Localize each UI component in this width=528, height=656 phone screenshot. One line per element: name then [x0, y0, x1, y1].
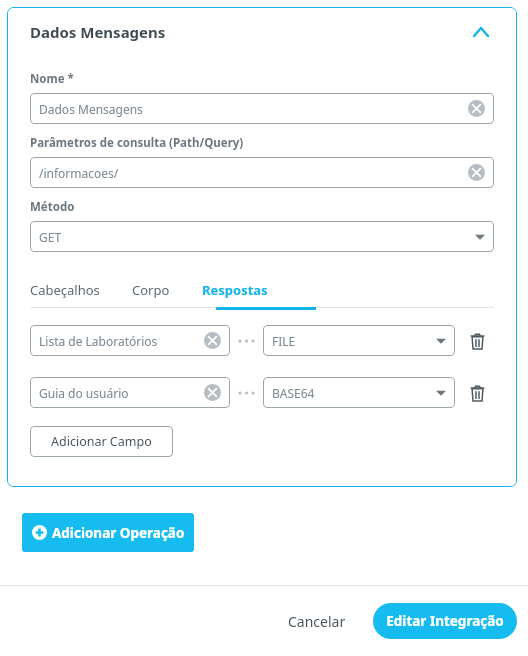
- button[interactable]: Recolher: [468, 19, 494, 45]
- button[interactable]: Guia do usuário: [30, 377, 230, 408]
- staticText: Dados Mensagens: [39, 101, 468, 117]
- button[interactable]: GET: [30, 221, 494, 252]
- button[interactable]: Excluir: [465, 381, 489, 405]
- staticText: Método: [30, 199, 75, 215]
- staticText: Adicionar Operação: [52, 524, 185, 542]
- staticText: Editar Integração: [386, 612, 504, 630]
- staticText: Cancelar: [288, 612, 346, 631]
- button[interactable]: Dados Mensagens: [30, 93, 494, 124]
- staticText: Adicionar Campo: [51, 433, 152, 450]
- button[interactable]: Lista de Laboratórios: [30, 325, 230, 356]
- button[interactable]: Cancelar: [278, 604, 356, 639]
- staticText: BASE64: [272, 385, 436, 401]
- button[interactable]: /informacoes/: [30, 157, 494, 188]
- staticText: GET: [39, 229, 475, 245]
- staticText: /informacoes/: [39, 165, 468, 181]
- staticText: Lista de Laboratórios: [39, 333, 204, 349]
- button[interactable]: Adicionar Operação: [22, 513, 194, 552]
- staticText: Respostas: [202, 281, 268, 299]
- button[interactable]: FILE: [263, 325, 455, 356]
- button[interactable]: Adicionar Campo: [30, 426, 173, 457]
- staticText: Corpo: [132, 281, 170, 299]
- button[interactable]: Respostas: [202, 281, 268, 299]
- button[interactable]: BASE64: [263, 377, 455, 408]
- button[interactable]: Cabeçalhos: [30, 281, 102, 299]
- staticText: Cabeçalhos: [30, 281, 100, 299]
- button[interactable]: Excluir: [465, 329, 489, 353]
- button[interactable]: Editar Integração: [373, 603, 517, 639]
- button[interactable]: Corpo: [132, 281, 172, 299]
- staticText: FILE: [272, 333, 436, 349]
- staticText: Guia do usuário: [39, 385, 204, 401]
- staticText: Dados Mensagens: [30, 22, 468, 42]
- staticText: Nome *: [30, 71, 74, 87]
- staticText: Parâmetros de consulta (Path/Query): [30, 135, 244, 151]
